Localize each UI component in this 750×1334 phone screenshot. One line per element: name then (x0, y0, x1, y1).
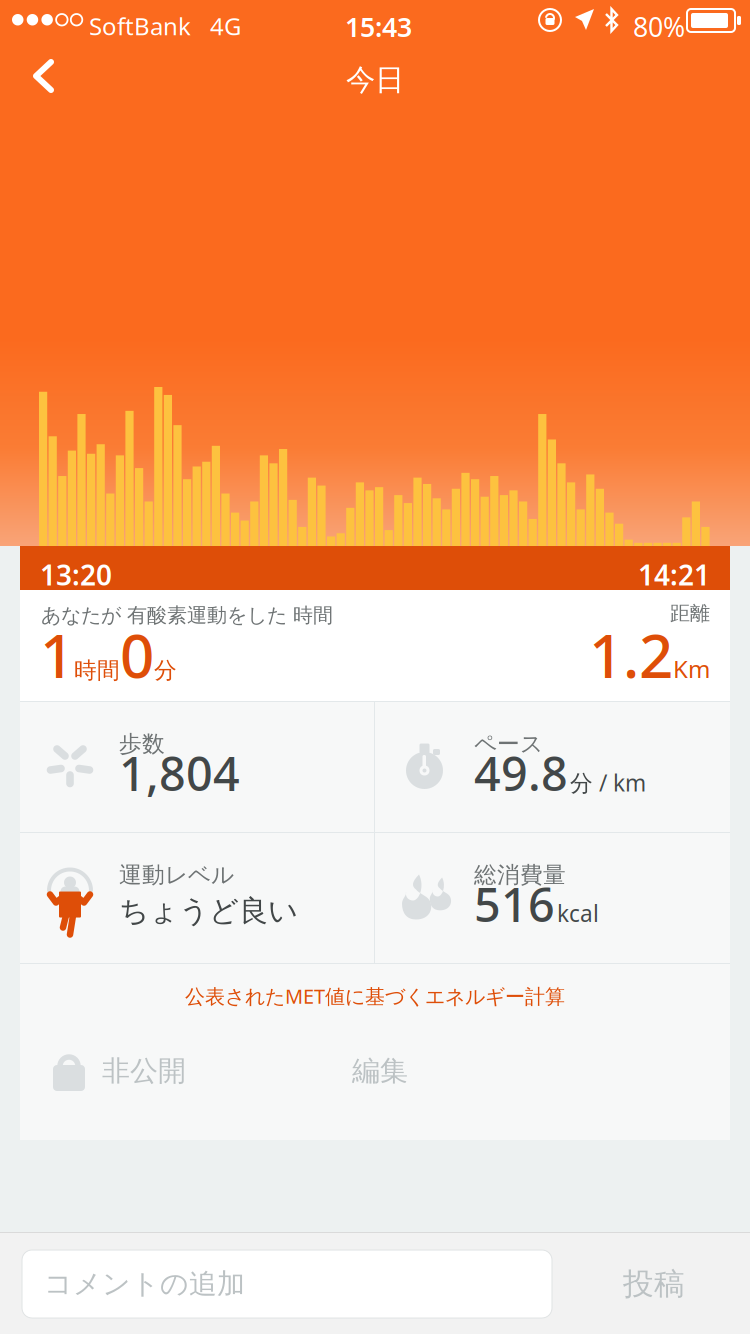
button[interactable]: ペース (375, 701, 730, 832)
staticText: 分 / km (570, 768, 646, 798)
button[interactable]: 総消費量 (375, 832, 730, 963)
staticText: 分 (154, 657, 177, 684)
staticText: 1,804 (119, 742, 240, 804)
staticText: 49.8 (474, 742, 568, 804)
staticText: kcal (557, 898, 599, 928)
staticText: 4G (210, 10, 241, 42)
staticText: 時間 (74, 657, 120, 684)
staticText: 0 (120, 615, 154, 695)
button[interactable]: 歩数 (20, 701, 375, 832)
staticText: 14:21 (638, 556, 710, 593)
button[interactable]: コメントの追加 (22, 1250, 552, 1318)
staticText: 投稿 (623, 1265, 685, 1303)
staticText: 今日 (346, 62, 404, 98)
staticText: 編集 (352, 1054, 408, 1088)
button[interactable]: 公表されたMET値に基づくエネルギー計算 (20, 963, 730, 1029)
button[interactable]: Back (2, 46, 90, 106)
staticText: 1.2 (589, 615, 673, 695)
staticText: ちょうど良い (119, 893, 298, 929)
staticText: SoftBank (89, 10, 191, 42)
staticText: ペース (474, 730, 543, 758)
staticText: 歩数 (119, 730, 165, 758)
button[interactable]: 運動レベル (20, 832, 375, 963)
button[interactable]: 編集 (352, 1041, 472, 1101)
staticText: 総消費量 (474, 861, 566, 889)
button[interactable]: 非公開 (52, 1041, 272, 1101)
staticText: 15:43 (345, 9, 412, 44)
staticText: 運動レベル (119, 861, 234, 889)
staticText: あなたが 有酸素運動をした 時間 (41, 603, 333, 628)
staticText: 公表されたMET値に基づくエネルギー計算 (185, 983, 565, 1009)
staticText: 1 (40, 615, 74, 695)
staticText: Km (673, 653, 710, 685)
staticText: 13:20 (40, 556, 112, 593)
staticText: コメントの追加 (44, 1267, 245, 1301)
button[interactable]: 投稿 (584, 1250, 724, 1318)
staticText: 516 (474, 873, 555, 935)
staticText: 距離 (670, 601, 710, 626)
staticText: 非公開 (102, 1054, 186, 1088)
staticText: 80% (633, 9, 685, 44)
